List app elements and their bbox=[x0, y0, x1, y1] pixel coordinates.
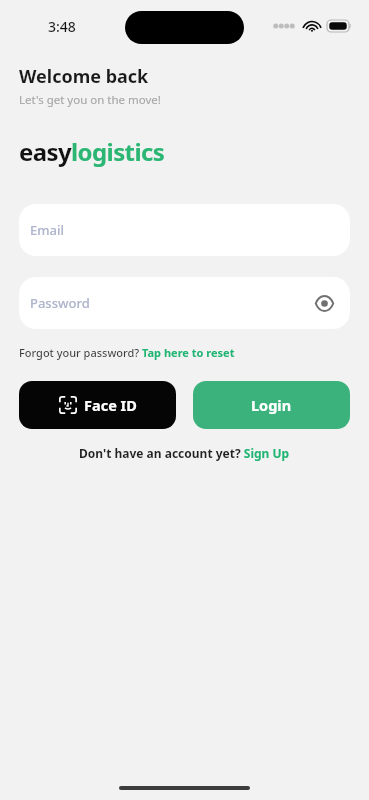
button[interactable]: Show password bbox=[309, 288, 339, 318]
button[interactable]: Forgot your password? Tap here to reset bbox=[19, 345, 235, 360]
button[interactable]: Password bbox=[19, 277, 350, 329]
staticText: Forgot your password? Tap here to reset bbox=[19, 345, 235, 360]
button[interactable]: Login bbox=[193, 381, 350, 429]
staticText: Login bbox=[251, 395, 292, 415]
button[interactable]: Email bbox=[19, 204, 350, 256]
staticText: easylogistics bbox=[19, 135, 165, 168]
staticText: 3:48 bbox=[48, 17, 76, 36]
button[interactable]: Face ID bbox=[19, 381, 176, 429]
staticText: Face ID bbox=[84, 395, 137, 415]
staticText: Welcome back bbox=[19, 64, 149, 89]
staticText: Password bbox=[30, 294, 90, 312]
button[interactable]: Don't have an account yet? Sign Up bbox=[79, 445, 290, 461]
staticText: Don't have an account yet? Sign Up bbox=[79, 445, 290, 461]
staticText: Let's get you on the move! bbox=[19, 92, 161, 108]
staticText: Email bbox=[30, 221, 65, 239]
